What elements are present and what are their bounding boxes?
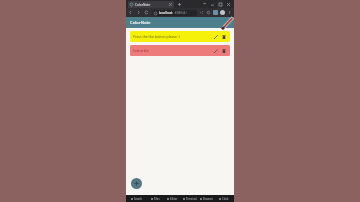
button[interactable]: Clock bbox=[215, 195, 232, 202]
staticText: Files bbox=[154, 197, 160, 201]
staticText: Browser bbox=[203, 197, 214, 201]
staticText: Editor bbox=[170, 197, 178, 201]
button[interactable]: Forward bbox=[136, 10, 141, 15]
button[interactable]: New tab bbox=[176, 1, 182, 7]
staticText: Clock bbox=[222, 197, 229, 201]
button[interactable]: Reload bbox=[144, 10, 149, 15]
button[interactable]: Profile bbox=[220, 10, 225, 15]
button[interactable]: Search bbox=[128, 195, 146, 202]
button[interactable]: Files bbox=[146, 195, 164, 202]
button[interactable]: More options bbox=[227, 10, 232, 15]
button[interactable]: Browser bbox=[198, 195, 215, 202]
staticText: Press the like button please :) bbox=[133, 34, 212, 39]
button[interactable]: Tab search bbox=[202, 1, 207, 7]
button[interactable]: Back bbox=[128, 10, 133, 15]
button[interactable]: Press the like button please :) bbox=[130, 31, 230, 42]
button[interactable]: ColorNote bbox=[128, 1, 174, 8]
staticText: Terminal bbox=[186, 197, 197, 201]
button[interactable]: Delete note bbox=[220, 33, 227, 40]
button[interactable]: Delete note bbox=[220, 47, 227, 54]
button[interactable]: Maximize bbox=[218, 1, 223, 7]
button[interactable]: Editor bbox=[164, 195, 181, 202]
button[interactable]: Share bbox=[199, 10, 204, 15]
button[interactable]: Bookmark bbox=[206, 10, 211, 15]
staticText: localhost bbox=[159, 11, 173, 15]
staticText: Search bbox=[134, 197, 143, 201]
staticText: Subscribe bbox=[133, 48, 212, 53]
button[interactable]: Minimize bbox=[210, 1, 215, 7]
button[interactable]: Terminal bbox=[181, 195, 198, 202]
button[interactable]: Extension bbox=[213, 10, 218, 15]
button[interactable]: Subscribe bbox=[130, 45, 230, 56]
button[interactable]: Edit bbox=[220, 17, 234, 28]
button[interactable]: Edit note bbox=[212, 33, 219, 40]
button[interactable]: Edit note bbox=[212, 47, 219, 54]
staticText: ColorNote bbox=[130, 20, 151, 26]
staticText: ColorNote bbox=[135, 3, 151, 7]
button[interactable]: localhost bbox=[152, 10, 197, 16]
staticText: :8080/#/ bbox=[174, 11, 187, 15]
button[interactable]: Add note bbox=[131, 178, 142, 189]
button[interactable]: Close bbox=[226, 1, 231, 7]
